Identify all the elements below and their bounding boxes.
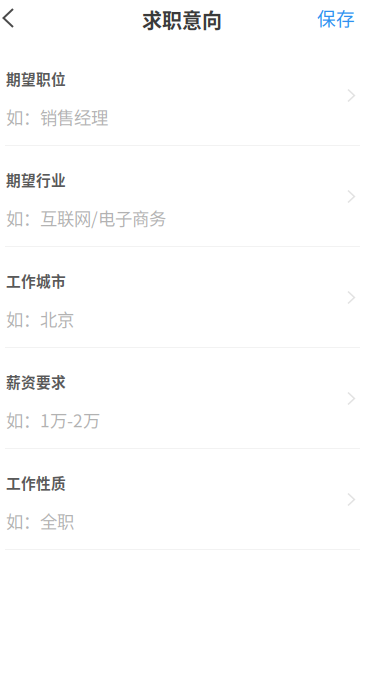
staticText: 工作城市 xyxy=(6,270,66,291)
button[interactable]: 工作城市 xyxy=(0,247,389,348)
staticText: 如：全职 xyxy=(6,508,74,533)
staticText: 薪资要求 xyxy=(6,371,66,392)
staticText: 工作性质 xyxy=(6,472,66,493)
staticText: 期望行业 xyxy=(6,169,66,190)
button[interactable]: Back xyxy=(0,0,36,45)
staticText: 保存 xyxy=(317,4,355,31)
staticText: 求职意向 xyxy=(142,5,222,34)
staticText: 如：1万-2万 xyxy=(6,407,100,432)
staticText: 如：销售经理 xyxy=(6,104,108,129)
staticText: 如：北京 xyxy=(6,306,74,331)
button[interactable]: 工作性质 xyxy=(0,449,389,550)
button[interactable]: 期望职位 xyxy=(0,45,389,146)
staticText: 期望职位 xyxy=(6,68,66,89)
staticText: 如：互联网/电子商务 xyxy=(6,205,166,230)
button[interactable]: 保存 xyxy=(317,0,389,45)
button[interactable]: 期望行业 xyxy=(0,146,389,247)
button[interactable]: 薪资要求 xyxy=(0,348,389,449)
